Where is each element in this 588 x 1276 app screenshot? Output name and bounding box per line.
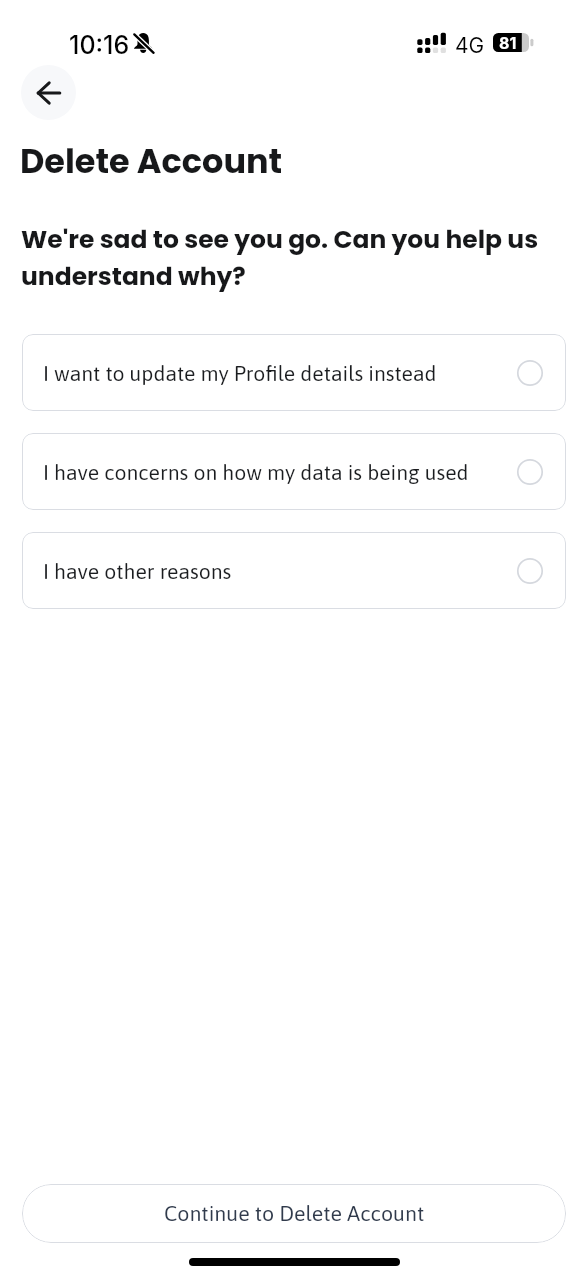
staticText: 10:16: [69, 30, 130, 60]
staticText: We're sad to see you go. Can you help us…: [21, 221, 555, 295]
button[interactable]: I have concerns on how my data is being …: [22, 433, 566, 510]
button[interactable]: Continue to Delete Account: [22, 1184, 566, 1243]
staticText: I have concerns on how my data is being …: [43, 460, 517, 484]
staticText: Delete Account: [20, 142, 283, 184]
staticText: 81: [499, 33, 517, 52]
button[interactable]: I have other reasons: [22, 532, 566, 609]
staticText: I want to update my Profile details inst…: [43, 361, 517, 385]
staticText: I have other reasons: [43, 559, 517, 583]
staticText: Continue to Delete Account: [164, 1201, 425, 1226]
staticText: 4G: [455, 33, 485, 58]
button[interactable]: I want to update my Profile details inst…: [22, 334, 566, 411]
button[interactable]: Back: [21, 65, 76, 120]
